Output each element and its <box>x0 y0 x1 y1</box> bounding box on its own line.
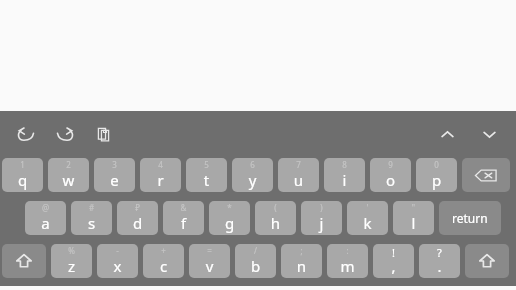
button[interactable]: ) <box>301 201 342 235</box>
button[interactable]: 0 <box>416 158 457 192</box>
staticText: " <box>393 202 434 213</box>
staticText: 1 <box>2 159 43 170</box>
staticText: 5 <box>186 159 227 170</box>
staticText: ' <box>347 202 388 213</box>
staticText: c <box>143 256 184 276</box>
button[interactable]: 5 <box>186 158 227 192</box>
staticText: y <box>232 170 273 190</box>
staticText: o <box>370 170 411 190</box>
staticText: @ <box>25 202 66 213</box>
button[interactable]: 7 <box>278 158 319 192</box>
staticText: * <box>209 202 250 213</box>
staticText: e <box>94 170 135 190</box>
staticText: 7 <box>278 159 319 170</box>
staticText: s <box>71 213 112 233</box>
staticText: & <box>163 202 204 213</box>
button[interactable]: * <box>209 201 250 235</box>
staticText: p <box>416 170 457 190</box>
button[interactable]: 9 <box>370 158 411 192</box>
button[interactable]: ₽ <box>117 201 158 235</box>
staticText: w <box>48 170 89 190</box>
staticText: t <box>186 170 227 190</box>
button[interactable]: ' <box>347 201 388 235</box>
staticText: i <box>324 170 365 190</box>
button[interactable]: = <box>189 244 230 278</box>
staticText: n <box>281 256 322 276</box>
button[interactable]: - <box>97 244 138 278</box>
staticText: ? <box>419 245 460 260</box>
staticText: 9 <box>370 159 411 170</box>
button[interactable]: 8 <box>324 158 365 192</box>
staticText: k <box>347 213 388 233</box>
staticText: z <box>51 256 92 276</box>
staticText: , <box>373 256 414 276</box>
button[interactable]: / <box>235 244 276 278</box>
staticText: x <box>97 256 138 276</box>
staticText: f <box>163 213 204 233</box>
staticText: d <box>117 213 158 233</box>
staticText: . <box>419 256 460 276</box>
staticText: g <box>209 213 250 233</box>
staticText: = <box>189 245 230 256</box>
staticText: v <box>189 256 230 276</box>
button[interactable]: Backspace <box>462 158 510 192</box>
staticText: 6 <box>232 159 273 170</box>
staticText: 4 <box>140 159 181 170</box>
button[interactable]: 4 <box>140 158 181 192</box>
button[interactable]: # <box>71 201 112 235</box>
staticText: % <box>51 245 92 256</box>
staticText: l <box>393 213 434 233</box>
button[interactable]: 3 <box>94 158 135 192</box>
staticText: 0 <box>416 159 457 170</box>
button[interactable]: % <box>51 244 92 278</box>
button[interactable]: Undo <box>10 119 40 149</box>
staticText: ; <box>281 245 322 256</box>
staticText: return <box>452 210 488 226</box>
button[interactable]: & <box>163 201 204 235</box>
staticText: + <box>143 245 184 256</box>
staticText: j <box>301 213 342 233</box>
button[interactable]: Shift <box>2 244 46 278</box>
button[interactable]: 2 <box>48 158 89 192</box>
staticText: h <box>255 213 296 233</box>
button[interactable]: Redo <box>50 119 80 149</box>
staticText: b <box>235 256 276 276</box>
button[interactable]: 1 <box>2 158 43 192</box>
staticText: ₽ <box>117 202 158 213</box>
staticText: 2 <box>48 159 89 170</box>
button[interactable]: 6 <box>232 158 273 192</box>
button[interactable]: @ <box>25 201 66 235</box>
button[interactable]: ! <box>373 244 414 278</box>
staticText: # <box>71 202 112 213</box>
staticText: r <box>140 170 181 190</box>
button[interactable]: : <box>327 244 368 278</box>
staticText: m <box>327 256 368 276</box>
button[interactable]: Paste <box>88 119 118 149</box>
button[interactable]: ; <box>281 244 322 278</box>
staticText: 8 <box>324 159 365 170</box>
button[interactable]: + <box>143 244 184 278</box>
button[interactable]: Previous field <box>432 119 462 149</box>
button[interactable]: " <box>393 201 434 235</box>
staticText: u <box>278 170 319 190</box>
button[interactable]: return <box>439 201 501 235</box>
staticText: / <box>235 245 276 256</box>
button[interactable]: Next field <box>474 119 504 149</box>
button[interactable]: ( <box>255 201 296 235</box>
button[interactable]: Shift <box>465 244 509 278</box>
staticText: ( <box>255 202 296 213</box>
staticText: ! <box>373 245 414 260</box>
staticText: : <box>327 245 368 256</box>
staticText: a <box>25 213 66 233</box>
button[interactable]: ? <box>419 244 460 278</box>
staticText: q <box>2 170 43 190</box>
staticText: 3 <box>94 159 135 170</box>
staticText: - <box>97 245 138 256</box>
staticText: ) <box>301 202 342 213</box>
